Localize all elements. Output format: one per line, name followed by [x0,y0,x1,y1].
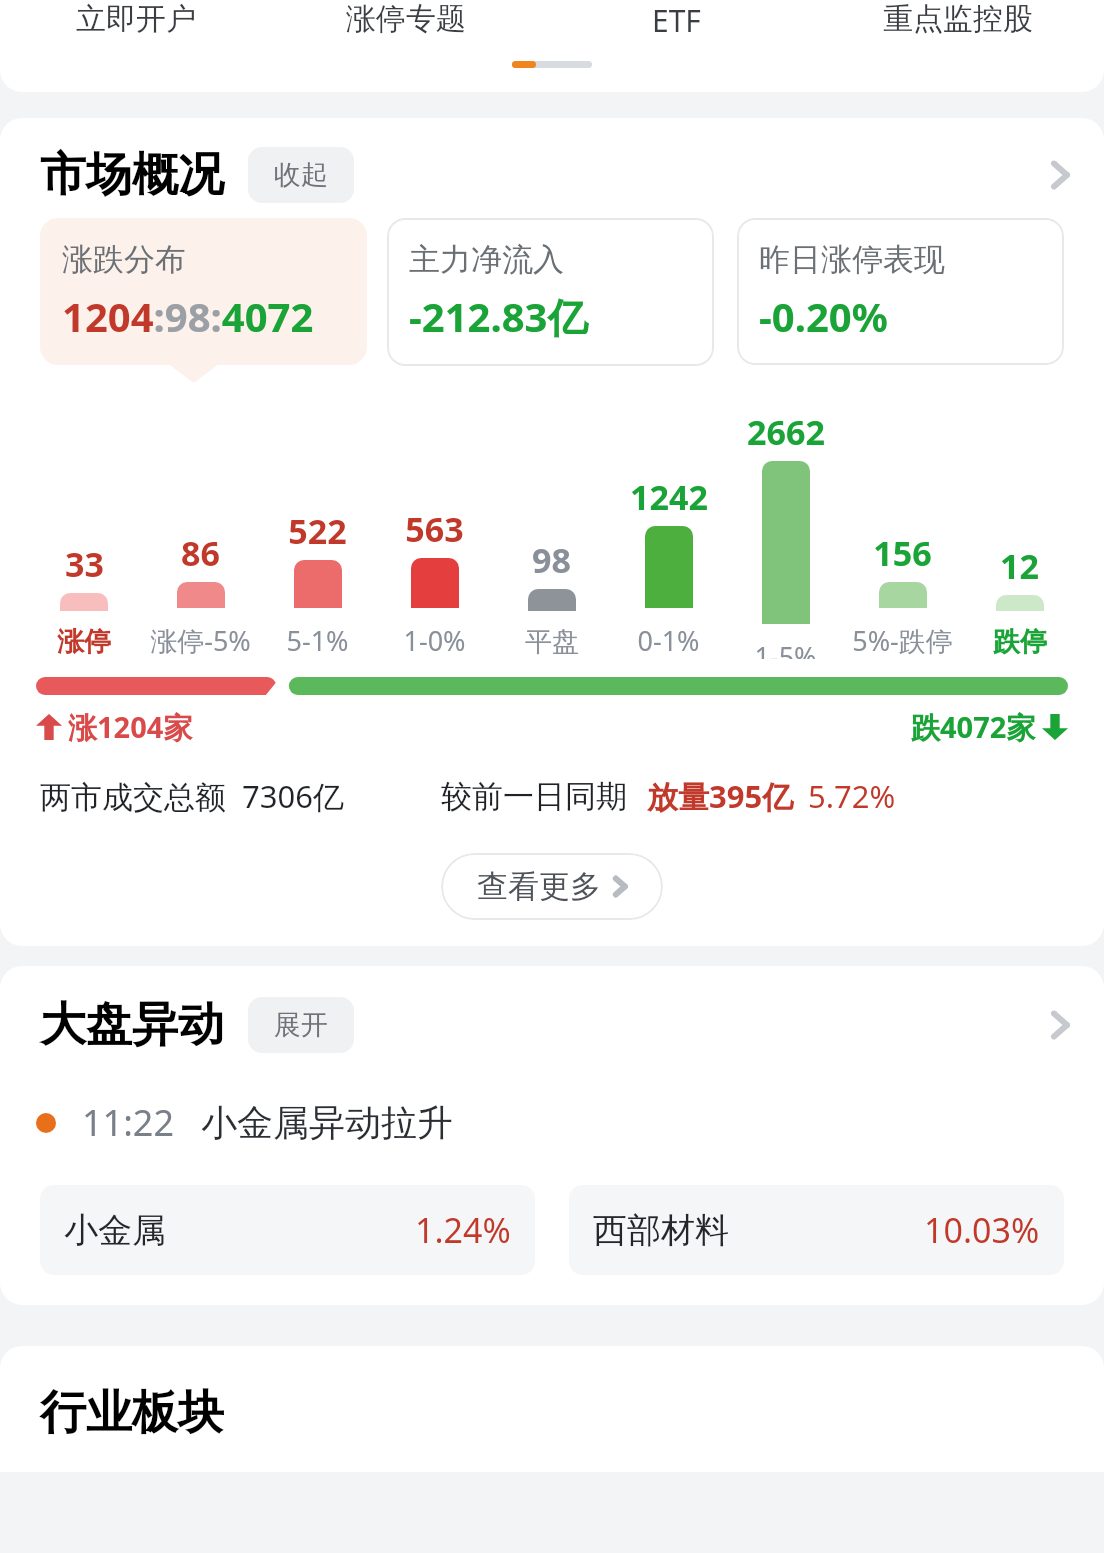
staticText: 涨停专题 [346,0,466,38]
staticText: 98 [532,537,571,583]
staticText: 两市成交总额 7306亿 [40,775,345,817]
button[interactable]: 展开 [248,997,354,1053]
staticText: 5-1% [286,622,349,659]
staticText: 522 [288,508,347,554]
staticText: 跌停 [993,625,1047,659]
button[interactable]: ETF [541,0,811,92]
staticText: ETF [652,0,701,41]
button[interactable]: 收起 [248,147,354,203]
button[interactable]: 小金属 [40,1185,535,1275]
staticText: 平盘 [525,625,579,659]
staticText: 0-1% [637,622,700,659]
staticText: 市场概况 [40,146,224,204]
button[interactable]: 立即开户 [0,0,271,92]
staticText: 1204:98:4072 [62,289,314,343]
button[interactable]: 市场概况 [0,118,1104,204]
staticText: 西部材料 [593,1209,729,1252]
staticText: 查看更多 [477,867,601,906]
staticText: 5%-跌停 [852,622,953,659]
staticText: 涨跌分布 [62,240,186,279]
staticText: 5.72% [808,775,896,817]
staticText: 12 [1000,543,1039,589]
staticText: 小金属异动拉升 [201,1100,453,1145]
staticText: 1-0% [403,622,466,659]
staticText: -0.20% [759,289,888,343]
staticText: 33 [65,541,104,587]
button[interactable]: 昨日涨停表现 [737,218,1064,365]
staticText: 10.03% [924,1207,1040,1253]
staticText: 大盘异动 [40,996,224,1054]
button[interactable]: 涨停专题 [271,0,541,92]
staticText: 涨1204家 [68,707,193,747]
staticText: 1.24% [415,1207,511,1253]
button[interactable]: 涨跌分布 [40,218,367,365]
staticText: 收起 [274,158,328,192]
button[interactable]: 大盘异动 [0,966,1104,1054]
staticText: 86 [181,530,220,576]
button[interactable]: 查看更多 [441,853,663,920]
button[interactable]: 西部材料 [569,1185,1064,1275]
staticText: 2662 [747,409,825,455]
staticText: 展开 [274,1008,328,1042]
staticText: 主力净流入 [409,240,564,279]
staticText: 昨日涨停表现 [759,240,945,279]
staticText: 小金属 [64,1209,166,1252]
staticText: 放量395亿 [647,775,794,817]
staticText: 1-5% [754,638,817,659]
button[interactable]: 11:22 [0,1098,1104,1147]
staticText: 涨停-5% [150,622,251,659]
staticText: 1242 [630,474,708,520]
staticText: 重点监控股 [883,0,1033,38]
staticText: 行业板块 [40,1384,224,1442]
staticText: 11:22 [82,1098,175,1147]
staticText: 较前一日同期 [441,777,627,816]
staticText: 涨停 [57,625,111,659]
staticText: 563 [405,506,464,552]
button[interactable]: 行业板块 [0,1384,1104,1442]
button[interactable]: 主力净流入 [387,218,714,366]
staticText: 跌4072家 [911,707,1036,747]
staticText: -212.83亿 [409,289,588,344]
staticText: 156 [873,530,932,576]
button[interactable]: 重点监控股 [811,0,1104,92]
staticText: 立即开户 [76,0,196,38]
